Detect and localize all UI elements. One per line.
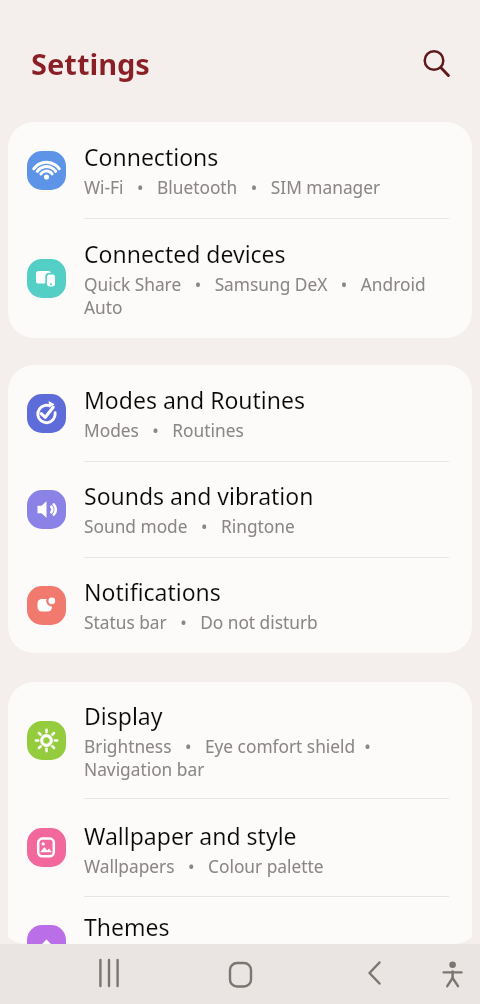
staticText: Modes • Routines	[84, 419, 244, 443]
staticText: Modes and Routines	[84, 384, 306, 415]
staticText: Status bar • Do not disturb	[84, 611, 318, 635]
staticText: Sounds and vibration	[84, 480, 314, 511]
staticText: Wallpapers • Colour palette	[84, 855, 324, 879]
staticText: Themes	[84, 911, 170, 942]
staticText: Connected devices	[84, 238, 286, 269]
staticText: Wallpaper and style	[84, 820, 297, 851]
staticText: Wi-Fi • Bluetooth • SIM manager	[84, 176, 381, 200]
staticText: Settings	[31, 44, 150, 83]
staticText: Sound mode • Ringtone	[84, 515, 295, 539]
staticText: Notifications	[84, 576, 221, 607]
staticText: Connections	[84, 141, 219, 172]
staticText: Quick Share • Samsung DeX • Android Auto	[84, 273, 426, 319]
staticText: Display	[84, 700, 163, 731]
staticText: Brightness • Eye comfort shield • Naviga…	[84, 735, 371, 781]
